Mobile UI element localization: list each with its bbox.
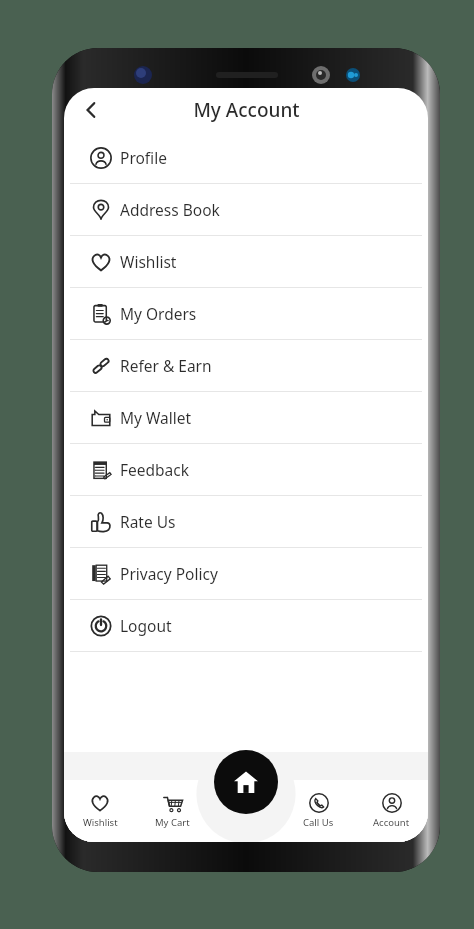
staticText: Wishlist [83,816,118,829]
button[interactable]: Profile [64,132,428,183]
staticText: My Orders [120,303,197,324]
staticText: Privacy Policy [120,563,218,584]
button[interactable]: Refer & Earn [64,340,428,391]
button[interactable]: Account [355,780,428,842]
staticText: Address Book [120,199,220,220]
button[interactable]: Wishlist [64,236,428,287]
button[interactable]: Address Book [64,184,428,235]
staticText: Call Us [303,816,334,829]
staticText: Account [373,816,410,829]
button[interactable]: My Wallet [64,392,428,443]
staticText: Profile [120,147,167,168]
staticText: My Wallet [120,407,192,428]
staticText: My Cart [155,816,190,829]
button[interactable]: Privacy Policy [64,548,428,599]
button[interactable]: Logout [64,600,428,651]
button[interactable]: My Orders [64,288,428,339]
staticText: Wishlist [120,251,177,272]
button[interactable]: Wishlist [64,780,136,842]
button[interactable]: Call Us [282,780,355,842]
button[interactable]: My Cart [136,780,209,842]
staticText: Rate Us [120,511,176,532]
staticText: Logout [120,615,172,636]
staticText: My Account [193,97,300,123]
button[interactable]: Back [72,91,110,129]
button[interactable]: Feedback [64,444,428,495]
staticText: Feedback [120,459,190,480]
button[interactable]: Rate Us [64,496,428,547]
staticText: Refer & Earn [120,355,212,376]
button[interactable]: Home [214,750,278,814]
